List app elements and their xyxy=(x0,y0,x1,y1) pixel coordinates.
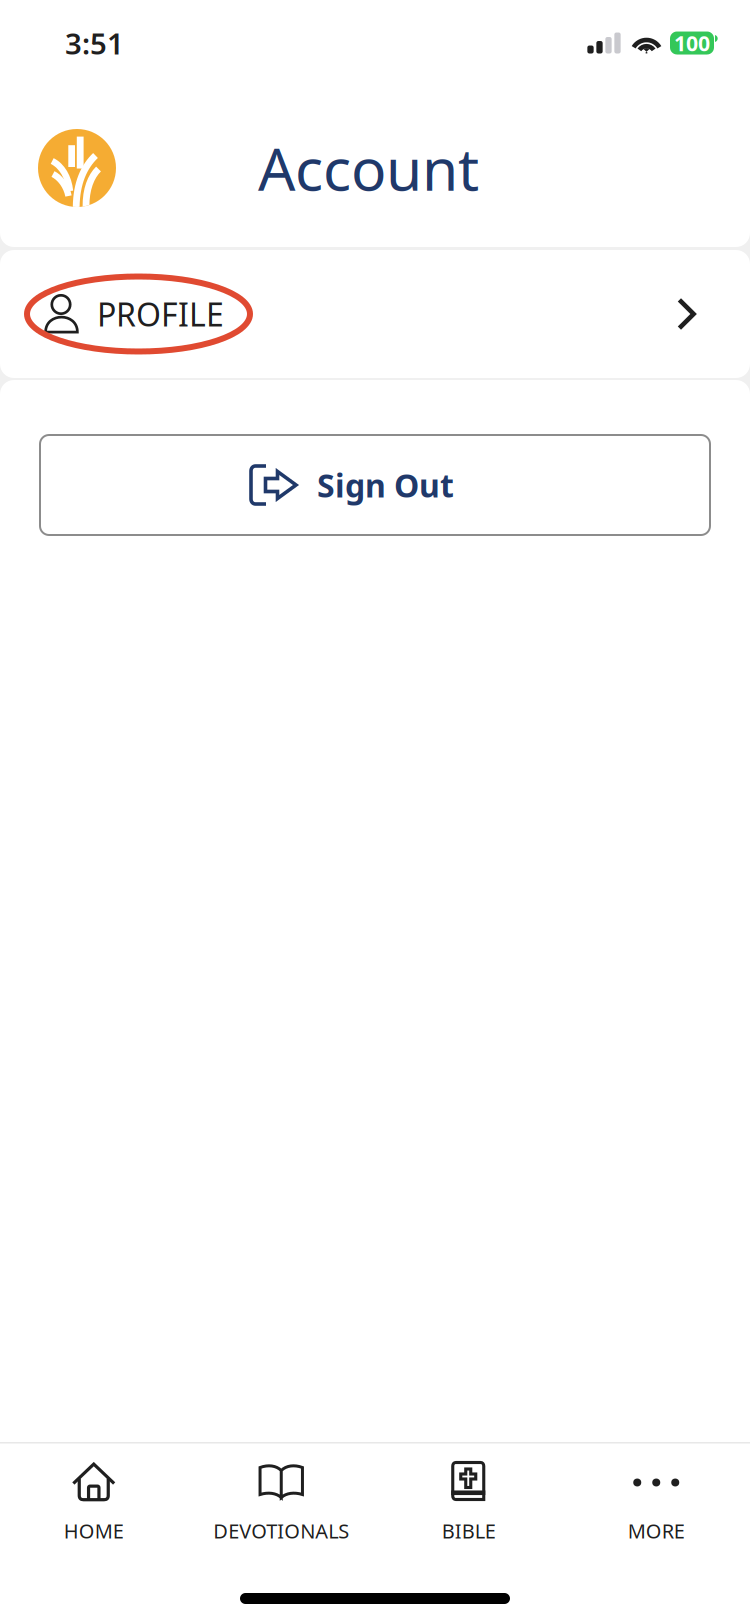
staticText: HOME xyxy=(64,1517,124,1544)
button[interactable]: DEVOTIONALS xyxy=(187,1443,375,1555)
staticText: Account xyxy=(258,129,479,207)
button[interactable]: HOME xyxy=(0,1443,187,1555)
staticText: 100 xyxy=(674,29,710,57)
staticText: PROFILE xyxy=(97,293,224,335)
staticText: DEVOTIONALS xyxy=(213,1517,349,1544)
button[interactable]: MORE xyxy=(562,1443,750,1555)
staticText: Sign Out xyxy=(317,464,454,506)
button[interactable]: Sign Out xyxy=(40,435,710,535)
button[interactable]: PROFILE xyxy=(0,250,750,378)
staticText: 3:51 xyxy=(65,23,124,62)
button[interactable]: BIBLE xyxy=(375,1443,562,1555)
staticText: BIBLE xyxy=(442,1517,496,1544)
staticText: MORE xyxy=(628,1517,685,1544)
